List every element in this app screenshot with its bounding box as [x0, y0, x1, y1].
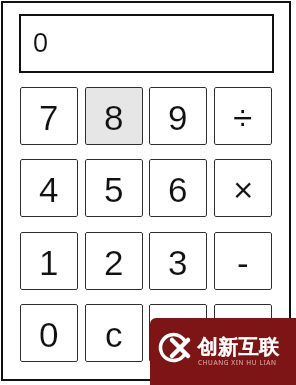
button[interactable]: 4 — [20, 159, 78, 217]
button[interactable]: c — [85, 304, 143, 362]
button[interactable]: - — [214, 232, 272, 290]
staticText: 6 — [168, 170, 188, 209]
staticText: CHUANG XIN HU LIAN — [198, 358, 277, 367]
button[interactable]: 0 — [19, 14, 274, 73]
button[interactable]: 1 — [20, 232, 78, 290]
button[interactable]: ÷ — [214, 87, 272, 145]
button[interactable]: 2 — [85, 232, 143, 290]
button[interactable]: 0 — [20, 304, 78, 362]
staticText: 3 — [168, 243, 188, 282]
button[interactable]: 7 — [20, 87, 78, 145]
staticText: + — [233, 315, 254, 354]
staticText: - — [237, 243, 249, 282]
staticText: 0 — [39, 315, 59, 354]
staticText: 2 — [104, 243, 124, 282]
button[interactable]: 8 — [85, 87, 143, 145]
staticText: 1 — [39, 243, 59, 282]
staticText: 4 — [39, 170, 59, 209]
staticText: = — [168, 315, 189, 354]
staticText: × — [233, 170, 254, 209]
staticText: 7 — [39, 98, 59, 137]
button[interactable]: = — [149, 304, 207, 362]
button[interactable]: 6 — [149, 159, 207, 217]
button[interactable]: × — [214, 159, 272, 217]
button[interactable]: 5 — [85, 159, 143, 217]
staticText: 9 — [168, 98, 188, 137]
staticText: ÷ — [233, 98, 253, 137]
button[interactable]: 3 — [149, 232, 207, 290]
staticText: c — [105, 315, 123, 354]
button[interactable]: + — [214, 304, 272, 362]
staticText: 5 — [104, 170, 124, 209]
staticText: 0 — [33, 28, 49, 58]
staticText: 8 — [104, 98, 124, 137]
staticText: 创新互联 — [197, 335, 279, 360]
button[interactable]: 9 — [149, 87, 207, 145]
